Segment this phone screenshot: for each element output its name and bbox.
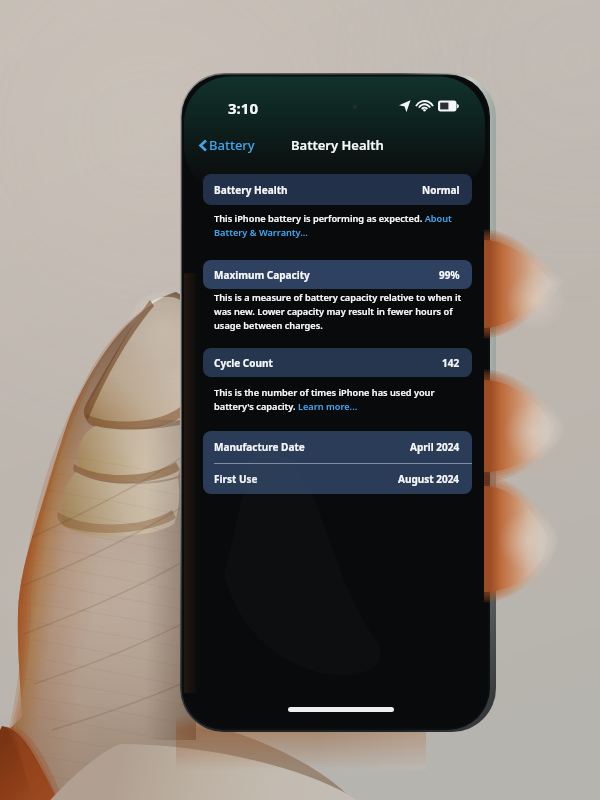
staticText: 3:10 bbox=[228, 98, 258, 118]
staticText: This is the number of times iPhone has u… bbox=[214, 386, 460, 413]
staticText: August 2024 bbox=[398, 472, 460, 486]
other: Back bbox=[199, 139, 207, 152]
staticText: April 2024 bbox=[410, 440, 460, 454]
button[interactable]: Battery Health bbox=[203, 174, 472, 205]
button[interactable]: Maximum Capacity bbox=[203, 260, 472, 289]
staticText: Battery Health bbox=[291, 136, 384, 154]
staticText: Maximum Capacity bbox=[214, 268, 310, 282]
other: Status icons bbox=[398, 99, 460, 113]
button[interactable]: Cycle Count bbox=[203, 348, 472, 377]
staticText: Battery bbox=[209, 136, 255, 154]
staticText: Normal bbox=[422, 183, 460, 197]
button[interactable]: First Use bbox=[203, 464, 472, 494]
staticText: This iPhone battery is performing as exp… bbox=[214, 212, 462, 239]
button[interactable]: Back bbox=[196, 134, 258, 156]
button[interactable]: Maximum Capacity bbox=[203, 260, 472, 289]
staticText: 99% bbox=[439, 268, 460, 282]
staticText: First Use bbox=[214, 472, 258, 486]
staticText: 142 bbox=[442, 356, 460, 370]
button[interactable]: Manufacture Date bbox=[203, 431, 472, 463]
staticText: Cycle Count bbox=[214, 356, 273, 370]
button[interactable]: Cycle Count bbox=[203, 348, 472, 377]
staticText: Battery Health bbox=[214, 183, 288, 197]
button[interactable]: Battery Health bbox=[203, 174, 472, 205]
staticText: Manufacture Date bbox=[214, 440, 305, 454]
staticText: This is a measure of battery capacity re… bbox=[214, 291, 472, 332]
